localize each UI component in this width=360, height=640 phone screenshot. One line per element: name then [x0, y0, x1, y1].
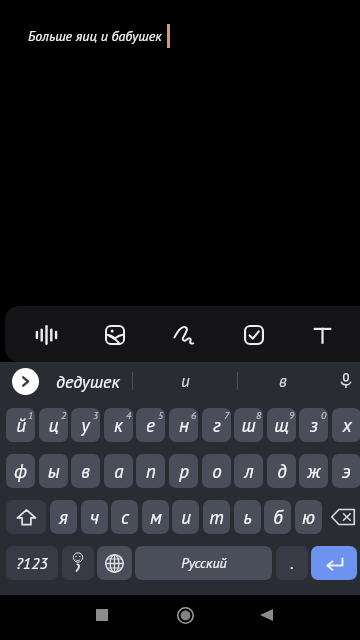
staticText: 2 — [61, 409, 67, 422]
staticText: 1 — [28, 409, 34, 422]
staticText: э — [342, 459, 351, 484]
staticText: дедушек — [56, 370, 120, 393]
button[interactable]: Backspace — [326, 500, 360, 534]
button[interactable]: з — [299, 408, 328, 442]
staticText: г — [213, 413, 221, 438]
staticText: з — [310, 413, 318, 438]
button[interactable]: ш — [234, 408, 263, 442]
staticText: д — [277, 459, 287, 484]
staticText: л — [244, 459, 254, 484]
staticText: а — [114, 459, 124, 484]
button[interactable]: Record audio — [12, 307, 81, 362]
staticText: . — [290, 553, 294, 574]
staticText: ы — [47, 459, 60, 484]
button[interactable]: п — [136, 454, 165, 488]
staticText: м — [150, 505, 162, 530]
staticText: б — [273, 505, 283, 530]
staticText: 3 — [93, 409, 99, 422]
staticText: й — [16, 413, 26, 438]
staticText: х — [342, 413, 352, 438]
button[interactable]: ь — [234, 500, 261, 534]
staticText: и — [181, 370, 190, 392]
staticText: 0 — [321, 409, 327, 422]
button[interactable]: ю — [295, 500, 322, 534]
button[interactable]: о — [202, 454, 231, 488]
button[interactable]: дедушек — [44, 364, 132, 398]
staticText: ь — [243, 505, 252, 530]
button[interactable]: ?123 — [6, 546, 58, 580]
staticText: 8 — [256, 409, 262, 422]
staticText: 4 — [126, 409, 132, 422]
button[interactable]: к — [104, 408, 133, 442]
staticText: Больше яиц и бабушек — [28, 27, 162, 45]
button[interactable]: и — [133, 364, 237, 398]
staticText: 7 — [224, 409, 230, 422]
button[interactable]: Back — [246, 595, 286, 635]
button[interactable]: Shift — [6, 500, 46, 534]
button[interactable]: т — [203, 500, 230, 534]
button[interactable]: е — [136, 408, 165, 442]
staticText: ш — [241, 413, 256, 438]
staticText: с — [121, 505, 129, 530]
button[interactable]: ч — [81, 500, 108, 534]
staticText: щ — [274, 413, 289, 438]
button[interactable]: Draw — [150, 307, 219, 362]
staticText: у — [81, 413, 90, 438]
button[interactable]: э — [332, 454, 360, 488]
staticText: н — [179, 413, 189, 438]
button[interactable]: Home — [165, 595, 205, 635]
staticText: 6 — [191, 409, 197, 422]
button[interactable]: ц — [39, 408, 68, 442]
button[interactable]: в — [71, 454, 100, 488]
staticText: 5 — [158, 409, 164, 422]
staticText: ф — [14, 459, 27, 484]
staticText: и — [181, 505, 191, 530]
staticText: я — [59, 505, 68, 530]
button[interactable]: Text formatting — [288, 307, 357, 362]
button[interactable]: и — [172, 500, 199, 534]
button[interactable]: а — [104, 454, 133, 488]
button[interactable]: н — [169, 408, 198, 442]
staticText: к — [114, 413, 123, 438]
button[interactable]: Recent apps — [82, 595, 122, 635]
button[interactable]: Enter — [311, 546, 357, 580]
button[interactable]: б — [264, 500, 291, 534]
button[interactable]: ж — [299, 454, 328, 488]
button[interactable]: я — [50, 500, 77, 534]
staticText: ю — [302, 505, 315, 530]
staticText: е — [146, 413, 155, 438]
button[interactable]: ы — [39, 454, 68, 488]
button[interactable]: Русский — [135, 546, 272, 580]
staticText: Русский — [181, 554, 227, 572]
button[interactable]: г — [202, 408, 231, 442]
staticText: ч — [90, 505, 99, 530]
button[interactable]: у — [71, 408, 100, 442]
button[interactable]: д — [267, 454, 296, 488]
button[interactable]: й — [6, 408, 35, 442]
button[interactable]: в — [238, 364, 328, 398]
button[interactable]: х — [332, 408, 360, 442]
button[interactable]: Voice typing — [331, 366, 360, 396]
staticText: в — [81, 459, 90, 484]
button[interactable]: щ — [267, 408, 296, 442]
staticText: п — [146, 459, 156, 484]
button[interactable]: . — [276, 546, 308, 580]
button[interactable]: л — [234, 454, 263, 488]
staticText: ?123 — [16, 553, 48, 574]
button[interactable]: с — [111, 500, 138, 534]
button[interactable]: ф — [6, 454, 35, 488]
staticText: в — [279, 370, 287, 392]
staticText: ж — [307, 459, 321, 484]
button[interactable]: More suggestions — [12, 368, 39, 395]
staticText: т — [209, 505, 224, 530]
button[interactable]: м — [142, 500, 169, 534]
staticText: 9 — [289, 409, 295, 422]
button[interactable]: Insert image — [81, 307, 150, 362]
button[interactable]: Checklist — [219, 307, 288, 362]
staticText: р — [179, 459, 189, 484]
staticText: ц — [48, 413, 59, 438]
button[interactable] — [62, 546, 94, 580]
button[interactable]: р — [169, 454, 198, 488]
staticText: о — [212, 459, 222, 484]
button[interactable]: Change keyboard language — [97, 546, 132, 580]
